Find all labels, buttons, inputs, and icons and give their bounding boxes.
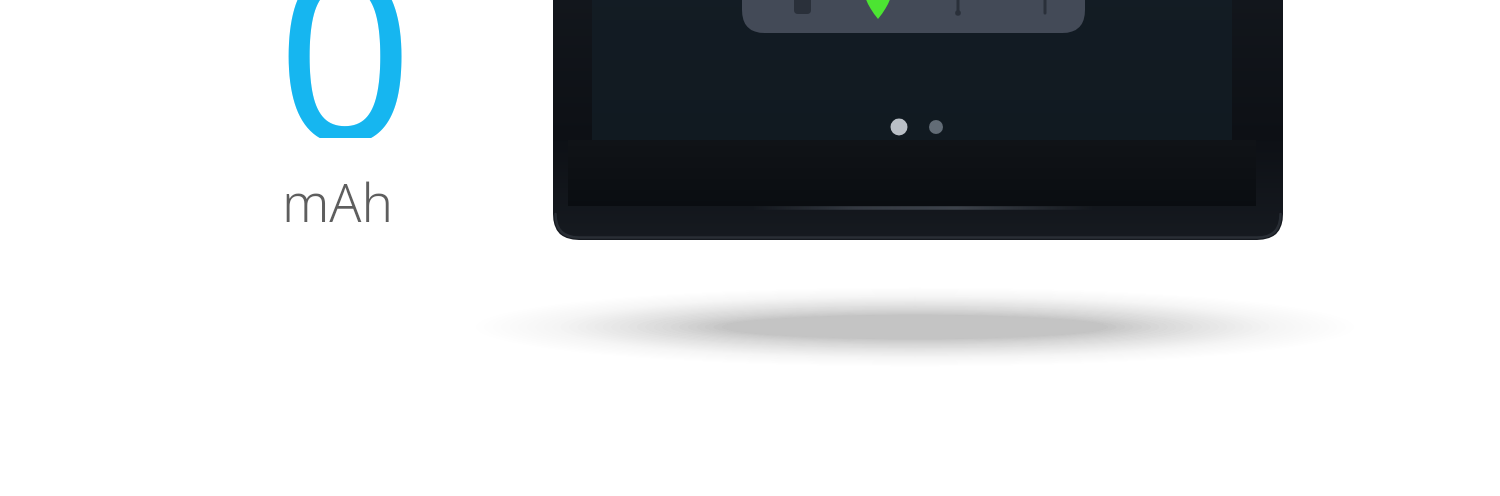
button[interactable]: Device preview	[0, 0, 1500, 496]
staticText: mAh	[282, 165, 394, 237]
staticText: 0	[225, 0, 465, 138]
